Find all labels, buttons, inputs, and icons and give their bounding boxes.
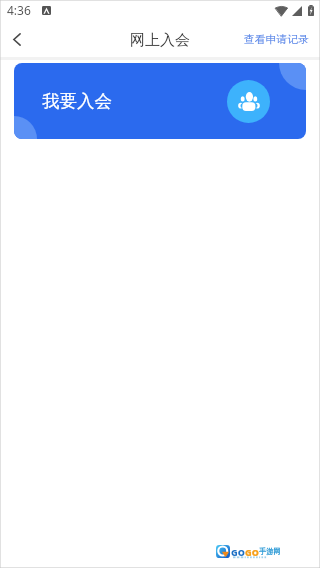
staticText: 手游网 <box>259 547 281 556</box>
staticText: GO <box>245 546 259 558</box>
button[interactable]: Back <box>0 22 36 57</box>
staticText: GO <box>231 546 245 558</box>
button[interactable]: 查看申请记录 <box>233 25 320 55</box>
staticText: 查看申请记录 <box>244 33 309 47</box>
staticText: 我要入会 <box>42 90 112 112</box>
button[interactable]: 我要入会 <box>14 63 306 139</box>
staticText: 网上入会 <box>130 31 190 50</box>
staticText: 4:36 <box>7 2 31 18</box>
